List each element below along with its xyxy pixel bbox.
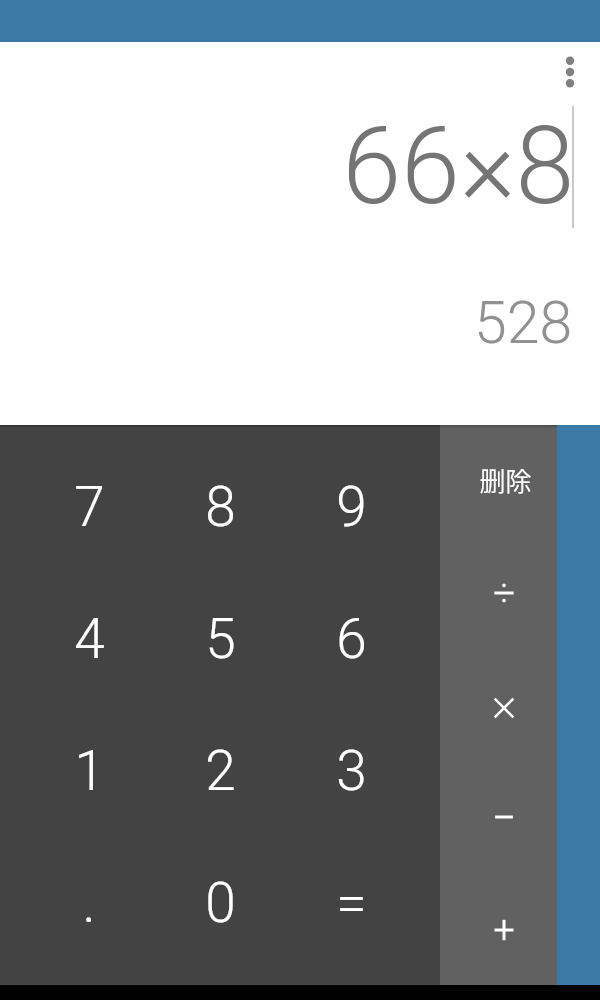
staticText: 7 [74,475,105,539]
button[interactable]: 1 [23,705,155,837]
staticText: = [336,871,367,935]
button[interactable]: 7 [23,441,155,573]
staticText: 2 [205,739,236,803]
button[interactable]: 4 [23,573,155,705]
button[interactable]: 2 [155,705,286,837]
button[interactable]: More options [542,44,598,100]
button[interactable]: 删除 [440,425,557,537]
button[interactable]: 8 [155,441,286,573]
button[interactable]: Multiply [440,649,557,761]
button[interactable]: 6 [286,573,417,705]
staticText: 9 [336,475,367,539]
staticText: 0 [205,871,236,935]
button[interactable]: 5 [155,573,286,705]
button[interactable]: Divide [440,537,557,649]
staticText: 3 [336,739,367,803]
button[interactable]: = [286,837,417,969]
staticText: 删除 [479,461,532,499]
button[interactable]: 3 [286,705,417,837]
button[interactable]: 0 [155,837,286,969]
staticText: . [82,871,96,935]
button[interactable]: . [23,837,155,969]
button[interactable]: Calculation display [0,42,600,425]
button[interactable]: 9 [286,441,417,573]
button[interactable]: Minus [440,761,557,873]
staticText: 5 [205,607,236,671]
staticText: 66×8 [342,103,575,230]
staticText: 4 [74,607,105,671]
staticText: 1 [74,739,105,803]
staticText: 8 [205,475,236,539]
staticText: 528 [474,288,573,357]
button[interactable]: Plus [440,873,557,985]
staticText: 6 [336,607,367,671]
